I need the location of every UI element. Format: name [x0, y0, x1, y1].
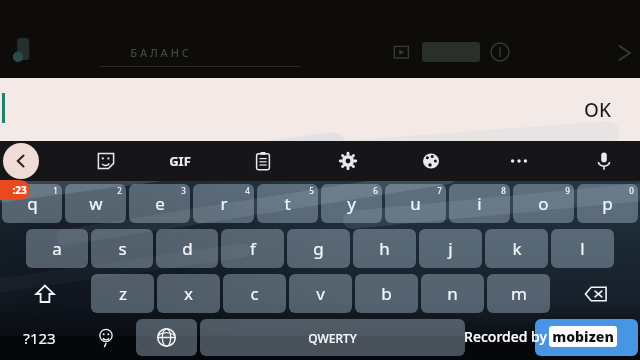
staticText: h — [379, 237, 390, 260]
staticText: Б А Л А Н С — [130, 45, 189, 60]
staticText: 1 — [53, 185, 58, 196]
staticText: q — [27, 192, 38, 215]
button[interactable]: c — [223, 274, 286, 313]
staticText: p — [602, 192, 613, 215]
button[interactable]: l — [551, 229, 614, 268]
staticText: r — [220, 192, 228, 215]
button[interactable]: Enter — [535, 319, 638, 356]
staticText: i — [477, 192, 482, 215]
button[interactable]: y — [321, 184, 382, 223]
button[interactable]: f — [221, 229, 284, 268]
staticText: c — [250, 282, 259, 305]
staticText: v — [316, 282, 325, 305]
staticText: d — [182, 237, 193, 260]
button[interactable]: ?123 — [2, 319, 76, 356]
button[interactable]: QWERTY — [200, 319, 465, 356]
button[interactable]: Shift — [2, 274, 88, 313]
button[interactable]: d — [156, 229, 218, 268]
button[interactable]: i — [449, 184, 510, 223]
staticText: 6 — [373, 185, 378, 196]
staticText: y — [347, 192, 356, 215]
staticText: a — [52, 237, 62, 260]
button[interactable]: Emoji — [79, 319, 133, 356]
button[interactable]: OK — [0, 78, 640, 141]
button[interactable]: OK — [554, 78, 640, 141]
staticText: 2 — [117, 185, 122, 196]
button[interactable]: r — [193, 184, 254, 223]
staticText: s — [118, 237, 127, 260]
button[interactable]: o — [513, 184, 574, 223]
staticText: w — [89, 192, 103, 215]
button[interactable]: Backspace — [553, 274, 638, 313]
button[interactable]: q — [2, 184, 62, 223]
button[interactable]: a — [26, 229, 88, 268]
button[interactable]: Themes — [411, 141, 451, 181]
button[interactable]: Back — [3, 143, 39, 179]
button[interactable]: More options — [499, 141, 539, 181]
button[interactable]: Voice input — [584, 141, 624, 181]
staticText: 4 — [245, 185, 250, 196]
button[interactable]: n — [421, 274, 484, 313]
staticText: l — [580, 237, 585, 260]
button[interactable]: w — [65, 184, 126, 223]
button[interactable]: e — [129, 184, 190, 223]
staticText: e — [155, 192, 165, 215]
staticText: 0 — [629, 185, 634, 196]
button[interactable]: Change keyboard — [136, 319, 197, 356]
staticText: OK — [584, 97, 611, 123]
staticText: 7 — [437, 185, 442, 196]
staticText: u — [410, 192, 421, 215]
button[interactable]: m — [487, 274, 550, 313]
staticText: x — [184, 282, 193, 305]
staticText: f — [250, 237, 256, 260]
staticText: z — [119, 282, 127, 305]
button[interactable]: Settings — [328, 141, 368, 181]
button[interactable]: u — [385, 184, 446, 223]
button[interactable]: g — [287, 229, 350, 268]
staticText: n — [447, 282, 458, 305]
staticText: b — [381, 282, 392, 305]
button[interactable]: h — [353, 229, 416, 268]
staticText: Recorded by — [462, 327, 549, 346]
button[interactable]: GIF — [160, 141, 200, 181]
staticText: 8 — [501, 185, 506, 196]
button[interactable]: s — [91, 229, 153, 268]
staticText: QWERTY — [308, 330, 357, 346]
staticText: k — [512, 237, 522, 260]
button[interactable]: j — [419, 229, 482, 268]
staticText: j — [448, 237, 453, 260]
button[interactable]: x — [157, 274, 220, 313]
button[interactable]: p — [577, 184, 638, 223]
staticText: 3 — [181, 185, 186, 196]
button[interactable]: v — [289, 274, 352, 313]
staticText: mobizen — [552, 327, 614, 346]
button[interactable]: Clipboard — [243, 141, 283, 181]
staticText: 5 — [309, 185, 314, 196]
button[interactable]: k — [485, 229, 548, 268]
staticText: t — [284, 192, 291, 215]
button[interactable]: t — [257, 184, 318, 223]
staticText: g — [313, 237, 324, 260]
staticText: :23 — [12, 183, 27, 197]
button[interactable]: b — [355, 274, 418, 313]
button[interactable]: z — [91, 274, 154, 313]
staticText: GIF — [169, 152, 191, 170]
button[interactable] — [468, 319, 532, 356]
staticText: ?123 — [23, 328, 56, 348]
staticText: m — [511, 282, 527, 305]
staticText: 9 — [565, 185, 570, 196]
button[interactable]: Stickers — [86, 141, 126, 181]
staticText: o — [538, 192, 549, 215]
